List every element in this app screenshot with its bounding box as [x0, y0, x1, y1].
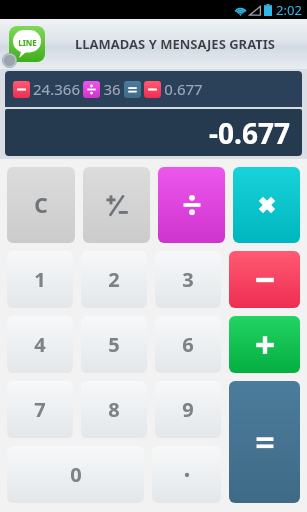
- staticText: 24.366: [33, 79, 80, 99]
- staticText: 3: [182, 266, 194, 293]
- button[interactable]: 0: [7, 446, 144, 503]
- staticText: 0.677: [164, 79, 203, 99]
- button[interactable]: Plus minus sign: [83, 167, 150, 243]
- button[interactable]: 3: [155, 251, 221, 308]
- staticText: 5: [108, 331, 120, 358]
- staticText: 2: [108, 266, 120, 293]
- button[interactable]: LINE ad banner: [0, 19, 307, 69]
- button[interactable]: [152, 446, 221, 503]
- staticText: 9: [182, 396, 194, 423]
- button[interactable]: 7: [7, 381, 73, 438]
- staticText: 36: [103, 79, 121, 99]
- staticText: 8: [108, 396, 120, 423]
- button[interactable]: 8: [81, 381, 147, 438]
- button[interactable]: Multiply: [233, 167, 300, 243]
- button[interactable]: 9: [155, 381, 221, 438]
- button[interactable]: 5: [81, 316, 147, 373]
- staticText: C: [34, 191, 48, 220]
- staticText: 7: [34, 396, 46, 423]
- button[interactable]: 6: [155, 316, 221, 373]
- staticText: 2:02: [276, 1, 302, 19]
- staticText: LLAMADAS Y MENSAJES GRATIS: [75, 35, 275, 53]
- staticText: -0.677: [209, 114, 290, 152]
- staticText: 4: [34, 331, 46, 358]
- staticText: 1: [34, 266, 46, 293]
- button[interactable]: 4: [7, 316, 73, 373]
- button[interactable]: 1: [7, 251, 73, 308]
- button[interactable]: Equals: [229, 381, 300, 503]
- staticText: LINE: [18, 37, 37, 48]
- staticText: 6: [182, 331, 194, 358]
- button[interactable]: Divide: [158, 167, 225, 243]
- button[interactable]: Plus: [229, 316, 300, 373]
- button[interactable]: 2: [81, 251, 147, 308]
- button[interactable]: Minus: [229, 251, 300, 308]
- button[interactable]: C: [7, 167, 75, 243]
- staticText: 0: [70, 461, 82, 488]
